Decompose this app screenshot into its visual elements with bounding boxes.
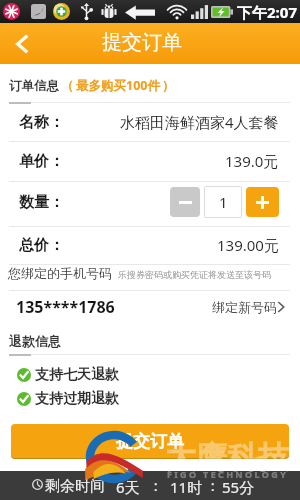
staticText: 55分 bbox=[222, 477, 255, 497]
button[interactable]: 支持七天退款 bbox=[17, 365, 119, 385]
staticText: 名称： bbox=[19, 113, 64, 132]
staticText: 139.0元 bbox=[225, 151, 279, 171]
staticText: 总价： bbox=[19, 236, 64, 255]
staticText: 提交订单 bbox=[102, 30, 182, 55]
staticText: 数量： bbox=[19, 193, 64, 212]
button[interactable]: 绑定新号码 bbox=[212, 299, 285, 315]
staticText: （ bbox=[61, 78, 74, 94]
staticText: 1 bbox=[219, 192, 228, 212]
button[interactable]: Increase quantity bbox=[246, 187, 279, 217]
button[interactable]: Back bbox=[0, 23, 45, 64]
staticText: 绑定新号码 bbox=[212, 299, 277, 315]
staticText: 支持过期退款 bbox=[35, 390, 119, 408]
staticText: 单价： bbox=[19, 152, 64, 171]
staticText: ： bbox=[205, 477, 220, 496]
staticText: 139.00元 bbox=[217, 235, 279, 255]
button[interactable]: 提交订单 bbox=[11, 424, 289, 458]
staticText: 支持七天退款 bbox=[35, 366, 119, 384]
staticText: ： bbox=[148, 477, 163, 496]
staticText: 剩余时间 bbox=[45, 477, 105, 496]
staticText: 6天 bbox=[116, 477, 140, 497]
staticText: 您绑定的手机号码 bbox=[8, 265, 112, 281]
staticText: 退款信息 bbox=[9, 333, 61, 349]
staticText: 最多购买100件 bbox=[76, 77, 160, 94]
staticText: 11时 bbox=[170, 477, 203, 497]
staticText: 大鹰科技 bbox=[165, 438, 289, 477]
staticText: F I G O T E C H N O L O G Y bbox=[167, 468, 286, 480]
staticText: 乐搜券密码或购买凭证将发送至该号码 bbox=[118, 269, 271, 280]
button[interactable]: Decrease quantity bbox=[170, 187, 200, 217]
button[interactable]: 支持过期退款 bbox=[17, 389, 119, 409]
staticText: 提交订单 bbox=[116, 431, 184, 452]
staticText: ） bbox=[162, 78, 175, 94]
staticText: 135****1786 bbox=[16, 296, 115, 318]
staticText: 水稻田海鲜酒家4人套餐 bbox=[120, 112, 279, 132]
staticText: 订单信息 bbox=[9, 78, 59, 94]
staticText: 下午2:07 bbox=[237, 2, 297, 22]
